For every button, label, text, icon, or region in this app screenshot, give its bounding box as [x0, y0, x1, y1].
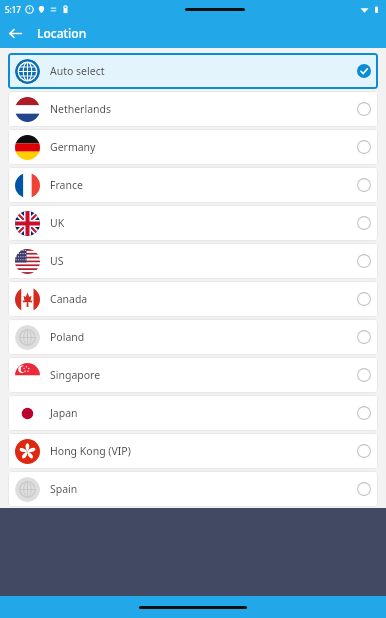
staticText: Canada — [50, 292, 88, 306]
button[interactable]: France — [8, 167, 378, 203]
button[interactable]: UK — [8, 205, 378, 241]
button[interactable]: Poland — [8, 319, 378, 355]
button[interactable]: Hong Kong (VIP) — [8, 433, 378, 469]
staticText: Netherlands — [50, 102, 112, 116]
button[interactable]: Germany — [8, 129, 378, 165]
staticText: Singapore — [50, 368, 101, 382]
staticText: Location — [37, 25, 87, 41]
button[interactable]: Auto select — [8, 53, 378, 89]
staticText: Germany — [50, 140, 96, 154]
staticText: Poland — [50, 330, 85, 344]
staticText: France — [50, 178, 83, 192]
button[interactable]: US — [8, 243, 378, 279]
staticText: Japan — [50, 406, 78, 420]
staticText: Hong Kong (VIP) — [50, 444, 131, 458]
button[interactable]: Netherlands — [8, 91, 378, 127]
staticText: Auto select — [50, 64, 105, 78]
staticText: 5:17 — [5, 4, 21, 15]
staticText: Spain — [50, 482, 78, 496]
staticText: US — [50, 254, 64, 268]
button[interactable]: Back — [0, 18, 30, 48]
staticText: UK — [50, 216, 65, 230]
button[interactable]: Canada — [8, 281, 378, 317]
button[interactable]: Spain — [8, 471, 378, 507]
button[interactable]: Japan — [8, 395, 378, 431]
button[interactable]: Singapore — [8, 357, 378, 393]
